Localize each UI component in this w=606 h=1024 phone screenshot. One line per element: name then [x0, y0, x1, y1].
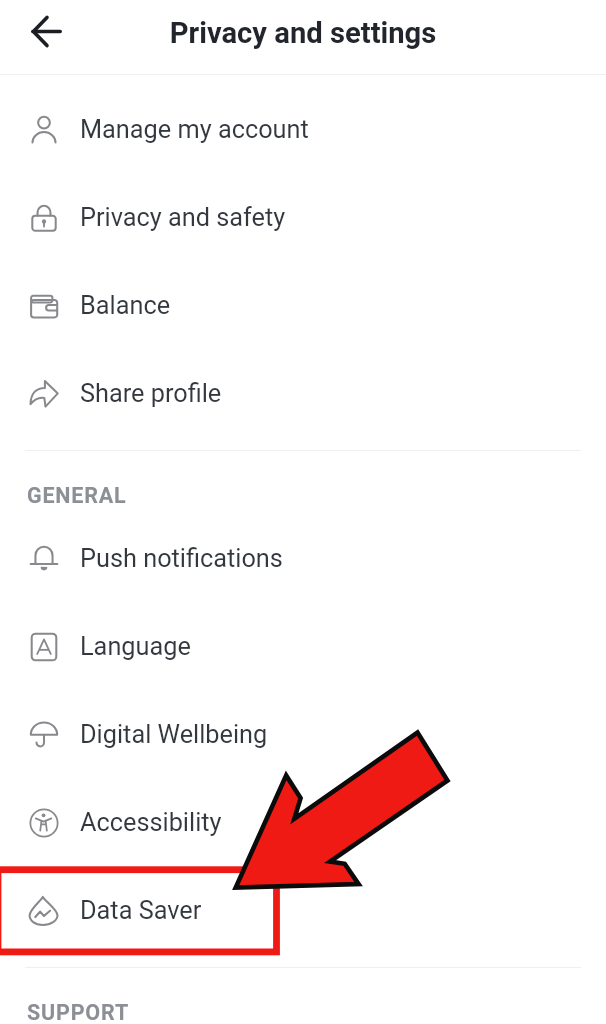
staticText: Balance: [80, 291, 171, 321]
staticText: Privacy and settings: [0, 16, 606, 50]
button[interactable]: Privacy and safety: [0, 174, 606, 262]
button[interactable]: Push notifications: [0, 515, 606, 603]
staticText: SUPPORT: [27, 1000, 130, 1024]
staticText: Language: [80, 632, 191, 662]
staticText: Digital Wellbeing: [80, 720, 268, 750]
button[interactable]: Accessibility: [0, 779, 606, 867]
staticText: Accessibility: [80, 808, 222, 838]
staticText: GENERAL: [27, 483, 127, 508]
button[interactable]: Back: [21, 6, 71, 56]
staticText: Share profile: [80, 379, 222, 409]
button[interactable]: Balance: [0, 262, 606, 350]
staticText: Push notifications: [80, 544, 283, 574]
button[interactable]: Manage my account: [0, 86, 606, 174]
staticText: Data Saver: [80, 896, 202, 926]
button[interactable]: Language: [0, 603, 606, 691]
button[interactable]: Digital Wellbeing: [0, 691, 606, 779]
button[interactable]: Share profile: [0, 350, 606, 438]
button[interactable]: Data Saver: [0, 867, 606, 955]
staticText: Manage my account: [80, 115, 309, 145]
staticText: Privacy and safety: [80, 203, 286, 233]
